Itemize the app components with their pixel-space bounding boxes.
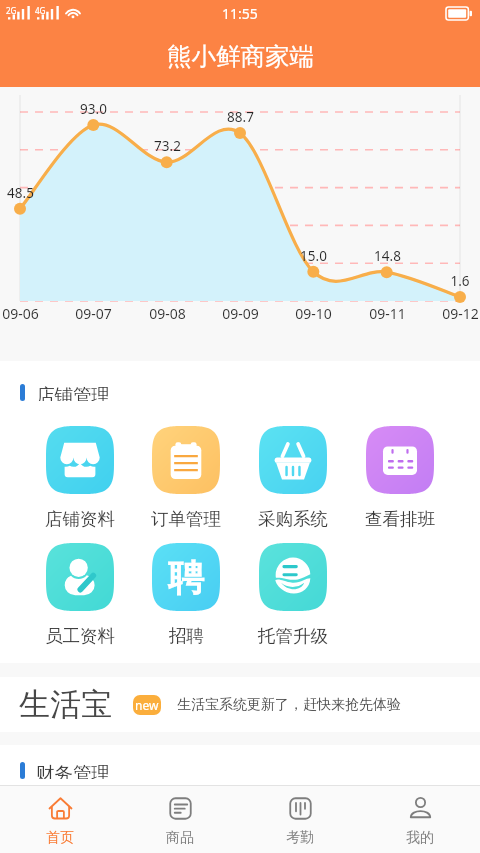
button[interactable]: 首页	[0, 786, 120, 853]
staticText: 托管升级	[258, 625, 328, 647]
staticText: 店铺资料	[45, 508, 115, 530]
button[interactable]: 商品	[120, 786, 240, 853]
staticText: 订单管理	[151, 508, 221, 530]
staticText: 2G	[6, 5, 17, 16]
staticText: 店铺管理	[36, 384, 110, 401]
staticText: new	[135, 697, 159, 713]
staticText: 15.0	[300, 247, 327, 265]
staticText: 查看排班	[365, 508, 435, 530]
button[interactable]: 生活宝	[0, 677, 480, 732]
staticText: 我的	[406, 829, 434, 847]
staticText: 考勤	[286, 829, 314, 847]
button[interactable]: 我的	[360, 786, 480, 853]
staticText: 生活宝系统更新了，赶快来抢先体验	[177, 696, 401, 714]
staticText: 09-08	[149, 304, 186, 323]
staticText: 14.8	[374, 247, 401, 265]
staticText: 熊小鲜商家端	[167, 41, 314, 72]
staticText: 09-11	[369, 304, 406, 323]
staticText: 88.7	[227, 108, 254, 126]
staticText: 生活宝	[19, 685, 112, 724]
staticText: 09-10	[295, 304, 332, 323]
button[interactable]: 托管升级	[239, 543, 346, 647]
staticText: 聘	[168, 555, 204, 600]
staticText: 09-07	[75, 304, 112, 323]
staticText: 09-12	[442, 304, 479, 323]
staticText: 首页	[46, 829, 74, 847]
staticText: 48.5	[7, 184, 34, 202]
staticText: 财务管理	[36, 762, 110, 779]
button[interactable]: 考勤	[240, 786, 360, 853]
button[interactable]: 员工资料	[27, 543, 133, 647]
staticText: 09-09	[222, 304, 259, 323]
staticText: 采购系统	[258, 508, 328, 530]
button[interactable]: 采购系统	[239, 426, 346, 530]
staticText: 招聘	[169, 625, 204, 647]
staticText: 商品	[166, 829, 194, 847]
staticText: 员工资料	[45, 625, 115, 647]
staticText: 4G	[35, 5, 46, 16]
button[interactable]: 订单管理	[133, 426, 239, 530]
staticText: 09-06	[2, 304, 39, 323]
staticText: 73.2	[154, 137, 181, 155]
button[interactable]: 聘	[133, 543, 239, 647]
staticText: 11:55	[222, 4, 258, 23]
button[interactable]: 店铺资料	[27, 426, 133, 530]
button[interactable]: 查看排班	[346, 426, 453, 530]
staticText: 93.0	[80, 100, 107, 118]
staticText: 1.6	[450, 272, 470, 290]
